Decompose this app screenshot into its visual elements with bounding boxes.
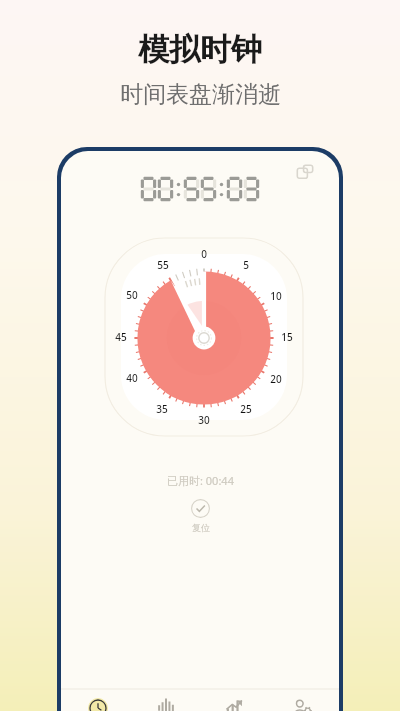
staticText: 25 (240, 402, 252, 416)
button[interactable]: 专注力 (203, 693, 265, 711)
staticText: 已用时: 00:44 (167, 473, 234, 488)
staticText: 复位 (192, 522, 210, 533)
staticText: 40 (126, 371, 138, 385)
staticText: 30 (198, 413, 210, 427)
staticText: 50 (126, 288, 138, 302)
staticText: 35 (156, 402, 168, 416)
button[interactable]: 计时器 (67, 693, 129, 711)
staticText: 10 (270, 289, 282, 303)
staticText: 5 (243, 258, 249, 272)
staticText: 55 (157, 258, 169, 272)
button[interactable]: 白噪音 (135, 693, 197, 711)
staticText: 45 (115, 330, 127, 344)
staticText: 20 (270, 372, 282, 386)
staticText: 时间表盘渐消逝 (120, 80, 281, 109)
staticText: 模拟时钟 (138, 30, 262, 69)
button[interactable]: 设置 (271, 693, 333, 711)
button[interactable]: Picture in picture (293, 161, 317, 185)
staticText: 15 (281, 330, 293, 344)
button[interactable]: 复位 (191, 499, 210, 533)
staticText: 0 (201, 247, 207, 261)
